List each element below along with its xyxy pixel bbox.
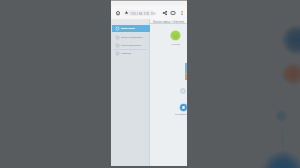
staticText: System Information [121, 44, 142, 47]
staticText: Advanced [121, 52, 132, 55]
staticText: Connected [171, 43, 181, 45]
button[interactable]: Address bar [123, 10, 154, 16]
staticText: Device Configuration [121, 36, 143, 39]
button[interactable]: System Information [112, 42, 150, 49]
staticText: 192.168.100.1/h [130, 11, 156, 16]
staticText: Device status > Internet [153, 20, 185, 24]
button[interactable]: Wi-fi devices [179, 103, 188, 112]
button[interactable]: Device Status [112, 25, 150, 32]
button[interactable]: Tabs [168, 8, 177, 17]
button[interactable]: More options [177, 8, 186, 17]
button[interactable]: Home [113, 8, 122, 17]
button[interactable]: Advanced [112, 50, 150, 57]
staticText: Wi-fi devices [175, 113, 187, 116]
button[interactable]: Internet connected [170, 30, 181, 41]
button[interactable]: Share [160, 8, 169, 17]
button[interactable]: Device Configuration [112, 34, 150, 41]
staticText: Device Status [121, 27, 135, 30]
